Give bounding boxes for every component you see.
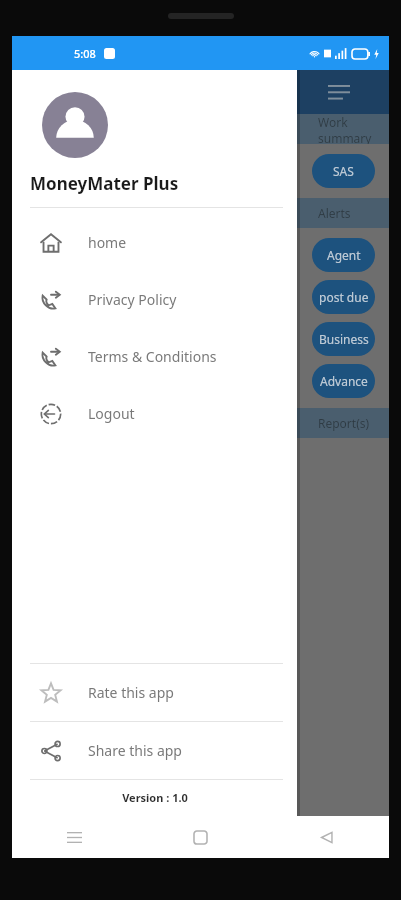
- button[interactable]: SAS: [312, 154, 375, 188]
- staticText: Terms & Conditions: [88, 347, 217, 366]
- button[interactable]: Terms & Conditions: [12, 328, 297, 385]
- button[interactable]: Share this app: [12, 722, 297, 779]
- staticText: Business: [319, 331, 369, 347]
- staticText: Report(s): [318, 415, 370, 431]
- button[interactable]: Business: [312, 322, 375, 356]
- staticText: Work summary: [318, 114, 389, 144]
- staticText: Privacy Policy: [88, 290, 177, 309]
- button[interactable]: Logout: [12, 385, 297, 442]
- staticText: Alerts: [318, 205, 351, 221]
- button[interactable]: Recents: [12, 816, 137, 858]
- staticText: MoneyMater Plus: [30, 172, 179, 195]
- staticText: Version : 1.0: [122, 790, 188, 805]
- staticText: Rate this app: [88, 683, 174, 702]
- button[interactable]: home: [12, 214, 297, 271]
- button[interactable]: post due: [312, 280, 375, 314]
- staticText: Logout: [88, 404, 135, 423]
- staticText: Agent: [327, 247, 361, 263]
- staticText: home: [88, 233, 127, 252]
- button[interactable]: Agent: [312, 238, 375, 272]
- staticText: Advance: [320, 373, 368, 389]
- staticText: 5:08: [74, 46, 96, 61]
- staticText: Share this app: [88, 741, 182, 760]
- button[interactable]: Rate this app: [12, 664, 297, 721]
- staticText: post due: [319, 289, 369, 305]
- button[interactable]: Privacy Policy: [12, 271, 297, 328]
- button[interactable]: Back: [263, 816, 389, 858]
- staticText: SAS: [333, 163, 354, 179]
- button[interactable]: Advance: [312, 364, 375, 398]
- button[interactable]: Home: [137, 816, 263, 858]
